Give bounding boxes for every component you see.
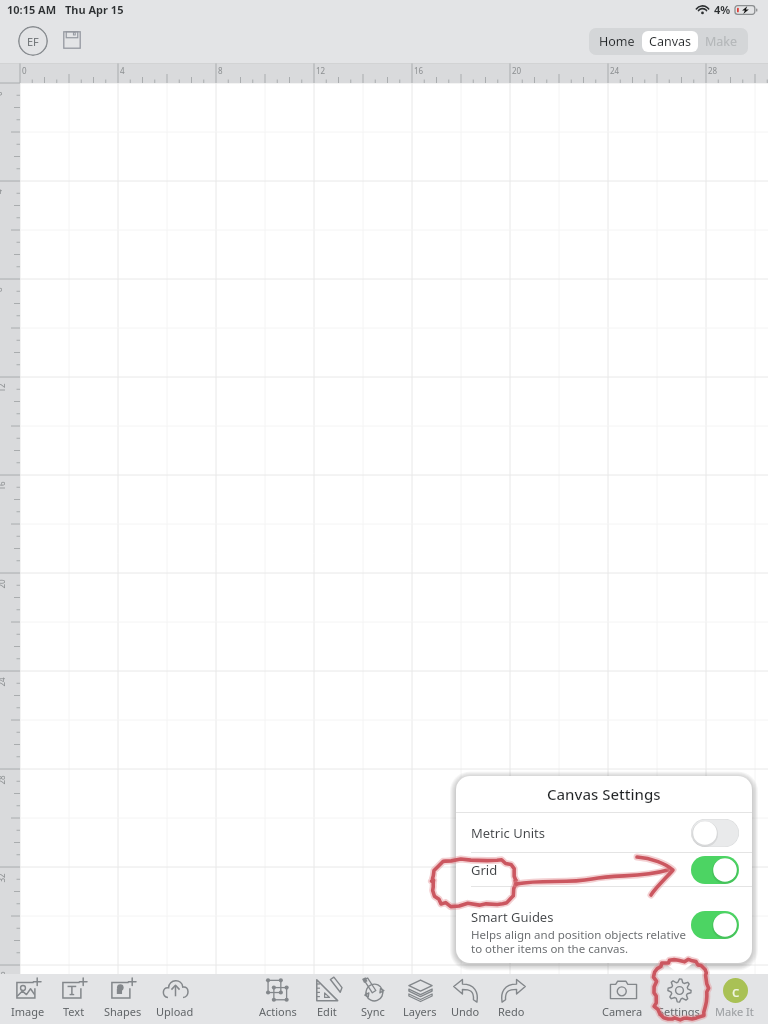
staticText: 12 bbox=[0, 382, 6, 392]
staticText: 32 bbox=[0, 872, 6, 882]
staticText: 12 bbox=[316, 65, 326, 76]
staticText: 24 bbox=[0, 676, 6, 686]
staticText: 28 bbox=[708, 65, 718, 76]
staticText: Helps align and position objects relativ… bbox=[471, 927, 686, 956]
staticText: Layers bbox=[403, 1004, 437, 1019]
staticText: 10:15 AM bbox=[7, 2, 57, 17]
button[interactable]: Grid bbox=[456, 853, 752, 886]
staticText: Camera bbox=[602, 1004, 643, 1019]
staticText: 36 bbox=[0, 970, 6, 980]
button[interactable] bbox=[488, 974, 536, 1024]
button[interactable] bbox=[599, 974, 647, 1024]
button[interactable] bbox=[50, 974, 98, 1024]
staticText: Home bbox=[599, 33, 635, 50]
staticText: 8 bbox=[218, 65, 223, 76]
button[interactable]: Disabled toggle bbox=[691, 819, 739, 847]
staticText: Actions bbox=[259, 1004, 297, 1019]
staticText: Grid bbox=[471, 861, 498, 879]
button[interactable] bbox=[151, 974, 199, 1024]
button[interactable]: Canvas bbox=[642, 31, 698, 52]
button[interactable] bbox=[254, 974, 302, 1024]
button[interactable]: Make bbox=[698, 31, 745, 52]
staticText: 20 bbox=[0, 578, 6, 588]
staticText: Image bbox=[11, 1004, 45, 1019]
staticText: 16 bbox=[0, 480, 6, 490]
button[interactable]: Home bbox=[592, 31, 642, 52]
staticText: Upload bbox=[156, 1004, 194, 1019]
button[interactable] bbox=[99, 974, 147, 1024]
staticText: Shapes bbox=[104, 1004, 142, 1019]
staticText: Make It bbox=[715, 1004, 754, 1019]
staticText: 20 bbox=[512, 65, 522, 76]
staticText: Canvas Settings bbox=[547, 784, 661, 804]
staticText: Metric Units bbox=[471, 824, 545, 842]
button[interactable]: Metric Units bbox=[456, 813, 752, 852]
staticText: EF bbox=[27, 34, 39, 49]
staticText: 24 bbox=[610, 65, 620, 76]
staticText: Sync bbox=[361, 1004, 385, 1019]
button[interactable]: Save project bbox=[58, 26, 86, 54]
button[interactable] bbox=[442, 974, 490, 1024]
button[interactable] bbox=[396, 974, 444, 1024]
staticText: c bbox=[732, 981, 740, 1001]
button[interactable] bbox=[303, 974, 351, 1024]
staticText: 0 bbox=[22, 65, 27, 76]
staticText: Settings bbox=[658, 1004, 700, 1019]
button[interactable]: Account bbox=[18, 26, 48, 56]
staticText: Smart Guides bbox=[471, 908, 554, 926]
staticText: 0 bbox=[0, 91, 4, 96]
button[interactable] bbox=[349, 974, 397, 1024]
staticText: 4 bbox=[0, 189, 4, 194]
staticText: Undo bbox=[451, 1004, 480, 1019]
button[interactable]: Enabled toggle bbox=[691, 911, 739, 939]
button[interactable]: Enabled toggle bbox=[691, 856, 739, 884]
staticText: Text bbox=[63, 1004, 85, 1019]
staticText: Make bbox=[705, 33, 738, 50]
staticText: Edit bbox=[317, 1004, 337, 1019]
staticText: 8 bbox=[0, 287, 4, 292]
staticText: 28 bbox=[0, 774, 6, 784]
staticText: Canvas bbox=[649, 33, 691, 50]
staticText: Redo bbox=[498, 1004, 525, 1019]
staticText: 16 bbox=[414, 65, 424, 76]
staticText: Thu Apr 15 bbox=[65, 2, 124, 17]
button[interactable] bbox=[655, 974, 703, 1024]
staticText: 4 bbox=[120, 65, 125, 76]
button[interactable]: c bbox=[711, 974, 759, 1024]
button[interactable]: Smart Guides bbox=[456, 887, 752, 963]
button[interactable] bbox=[4, 974, 52, 1024]
staticText: 4% bbox=[714, 2, 731, 17]
